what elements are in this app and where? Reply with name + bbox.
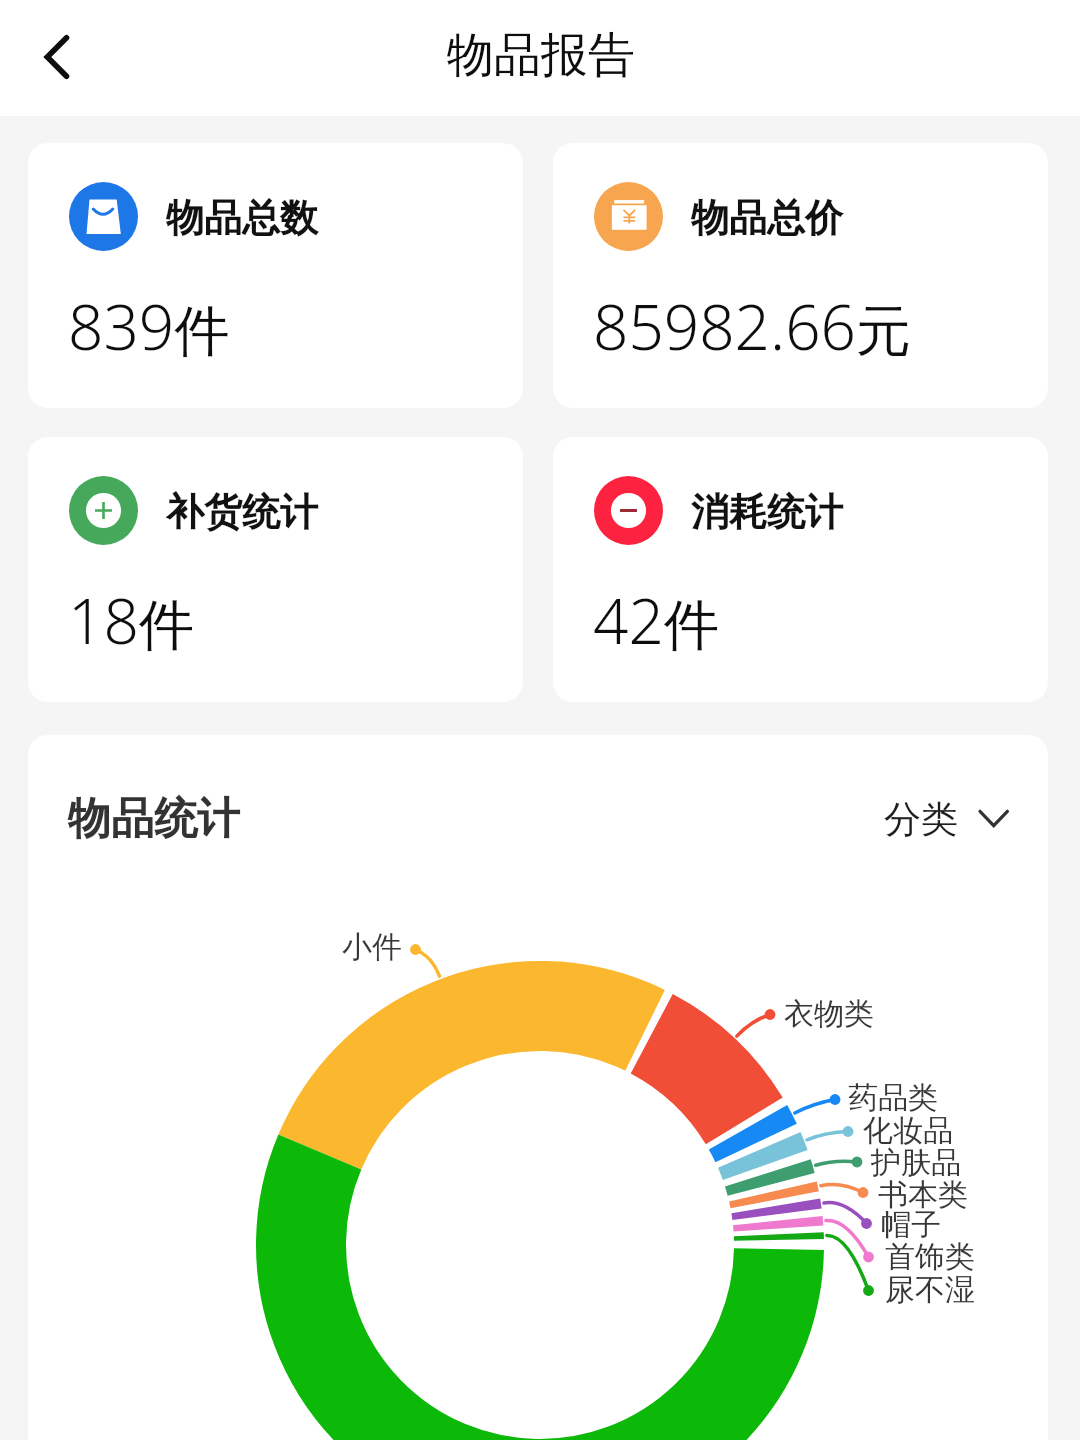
staticText: 化妆品 bbox=[863, 1112, 953, 1150]
button[interactable]: Back bbox=[20, 26, 90, 90]
button[interactable]: 消耗统计 bbox=[553, 437, 1048, 702]
staticText: 衣物类 bbox=[784, 995, 874, 1033]
staticText: 物品报告 bbox=[447, 26, 635, 85]
button[interactable]: 物品总价 bbox=[553, 143, 1048, 408]
button[interactable]: 分类 bbox=[884, 793, 1010, 845]
staticText: 85982.66元 bbox=[593, 284, 911, 368]
staticText: 小件 bbox=[342, 928, 402, 966]
staticText: 补货统计 bbox=[166, 488, 318, 536]
staticText: 帽子 bbox=[881, 1206, 941, 1244]
staticText: 尿不湿 bbox=[885, 1271, 975, 1309]
staticText: 首饰类 bbox=[885, 1238, 975, 1276]
staticText: 839件 bbox=[68, 284, 230, 368]
button[interactable]: 物品总数 bbox=[28, 143, 523, 408]
staticText: 物品总数 bbox=[166, 194, 318, 242]
staticText: 物品统计 bbox=[68, 792, 240, 846]
staticText: 分类 bbox=[884, 796, 958, 843]
staticText: 42件 bbox=[593, 578, 719, 662]
button[interactable]: 补货统计 bbox=[28, 437, 523, 702]
staticText: 消耗统计 bbox=[691, 488, 843, 536]
staticText: 书本类 bbox=[878, 1176, 968, 1214]
staticText: 护肤品 bbox=[871, 1144, 961, 1182]
staticText: 18件 bbox=[68, 578, 194, 662]
staticText: 物品总价 bbox=[691, 194, 843, 242]
staticText: 药品类 bbox=[848, 1079, 938, 1117]
